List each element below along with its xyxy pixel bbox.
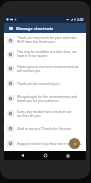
staticText: We apologise for the inconvenience and t… <box>17 95 83 103</box>
button[interactable]: Add shortcut <box>69 138 80 149</box>
button[interactable]: Home <box>41 151 50 160</box>
button[interactable]: We apologise for the inconvenience and t… <box>4 91 86 106</box>
button[interactable]: This may be available at a later time, w… <box>4 47 86 61</box>
button[interactable]: Navigation menu <box>7 25 14 32</box>
staticText: Please give us one more moment and we wi… <box>17 65 83 73</box>
button[interactable]: Back <box>18 151 27 160</box>
button[interactable]: Glad to see you! Thanks for the note. <box>4 121 86 136</box>
staticText: Thank you very much for your attention. … <box>17 36 83 44</box>
staticText: Thank you for contacting us! <box>17 82 60 86</box>
staticText: Happy to assist if you have more questio… <box>17 142 82 146</box>
staticText: 2:59 <box>77 18 84 22</box>
button[interactable]: Sorry, any trouble have a look at our se… <box>4 106 86 121</box>
staticText: Glad to see you! Thanks for the note. <box>17 127 72 131</box>
button[interactable]: Please give us one more moment and we wi… <box>4 61 86 76</box>
staticText: This may be available at a later time, w… <box>17 50 83 58</box>
button[interactable]: Thank you very much for your attention. … <box>4 33 86 47</box>
staticText: Sorry, any trouble have a look at our se… <box>17 110 83 118</box>
button[interactable]: Thank you for contacting us! <box>4 76 86 91</box>
button[interactable]: Recent apps <box>63 151 72 160</box>
button[interactable]: Happy to assist if you have more questio… <box>4 136 86 151</box>
staticText: Manage shortcuts <box>16 25 54 31</box>
